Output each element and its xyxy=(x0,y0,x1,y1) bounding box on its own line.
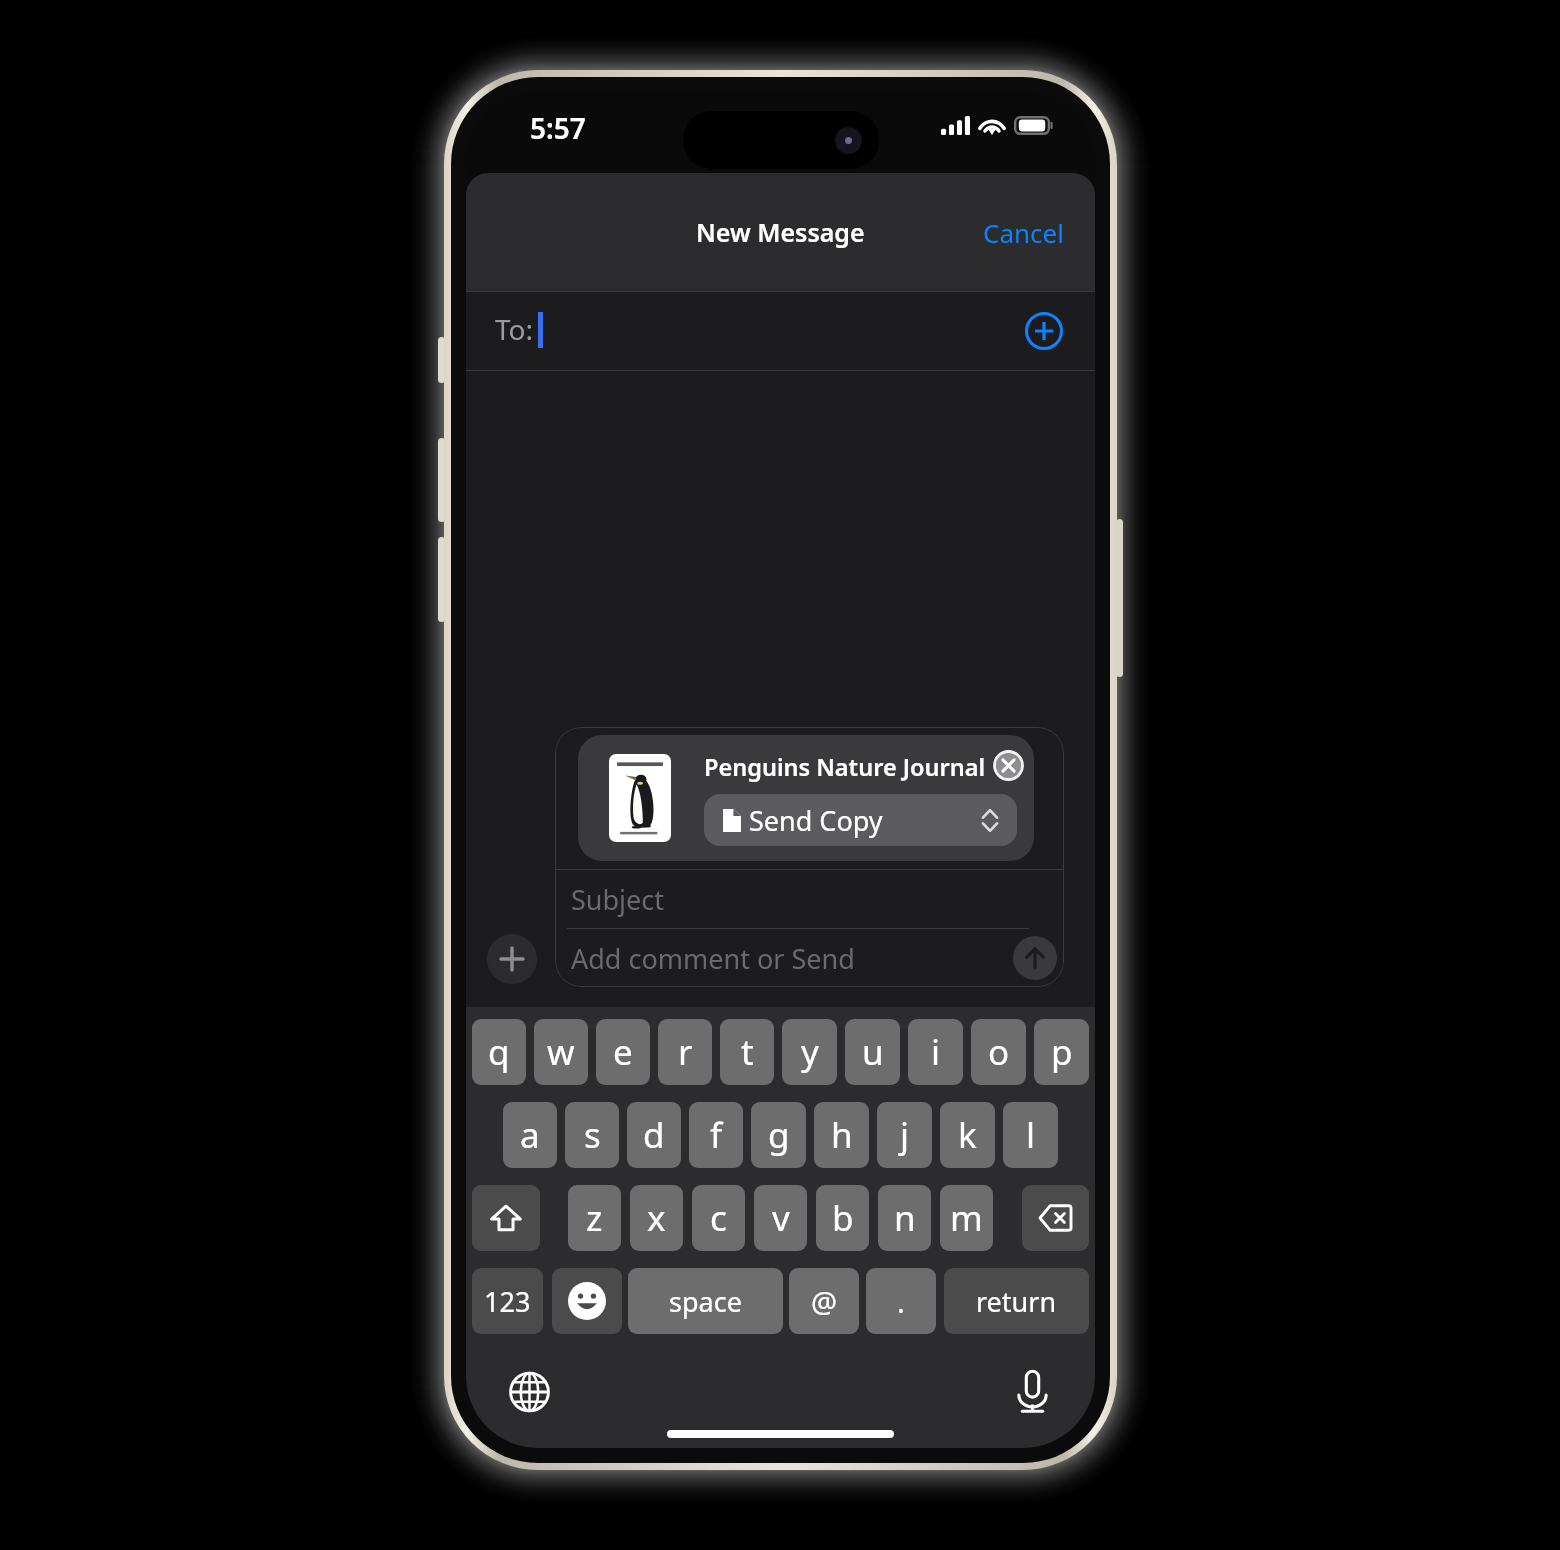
staticText: f xyxy=(710,1111,723,1159)
button[interactable]: @ xyxy=(789,1268,859,1334)
staticText: x xyxy=(647,1194,666,1242)
staticText: Penguins Nature Journal xyxy=(704,751,986,783)
staticText: y xyxy=(801,1028,819,1076)
button[interactable]: g xyxy=(751,1102,806,1168)
button[interactable]: k xyxy=(940,1102,995,1168)
button[interactable]: z xyxy=(568,1185,621,1251)
button[interactable]: x xyxy=(630,1185,683,1251)
button[interactable]: o xyxy=(971,1019,1026,1085)
button[interactable]: 123 xyxy=(472,1268,543,1334)
staticText: New Message xyxy=(696,215,865,249)
staticText: o xyxy=(988,1028,1010,1076)
staticText: Cancel xyxy=(983,215,1064,250)
button[interactable]: Send xyxy=(1013,936,1057,980)
staticText: 5:57 xyxy=(530,109,586,147)
staticText: i xyxy=(931,1028,941,1076)
staticText: w xyxy=(547,1028,575,1076)
staticText: c xyxy=(710,1194,727,1242)
button[interactable]: . xyxy=(866,1268,936,1334)
staticText: h xyxy=(831,1111,853,1159)
button[interactable]: u xyxy=(845,1019,900,1085)
button[interactable]: n xyxy=(878,1185,931,1251)
button[interactable]: Cancel xyxy=(952,201,1095,264)
staticText: e xyxy=(613,1028,633,1076)
staticText: j xyxy=(900,1111,910,1159)
button[interactable]: space xyxy=(628,1268,783,1334)
button[interactable]: Change keyboard xyxy=(509,1371,550,1413)
button[interactable]: i xyxy=(908,1019,963,1085)
staticText: n xyxy=(894,1194,916,1242)
button[interactable]: Add contact xyxy=(1025,312,1063,350)
button[interactable]: l xyxy=(1003,1102,1058,1168)
button[interactable]: c xyxy=(692,1185,745,1251)
staticText: u xyxy=(862,1028,884,1076)
staticText: @ xyxy=(811,1282,838,1321)
staticText: b xyxy=(832,1194,854,1242)
button[interactable]: w xyxy=(534,1019,588,1085)
staticText: Add comment or Send xyxy=(571,940,855,977)
button[interactable]: t xyxy=(720,1019,774,1085)
button[interactable]: b xyxy=(816,1185,869,1251)
button[interactable]: y xyxy=(782,1019,837,1085)
staticText: m xyxy=(950,1194,983,1242)
staticText: Send Copy xyxy=(749,802,883,839)
staticText: . xyxy=(897,1282,905,1321)
staticText: s xyxy=(584,1111,601,1159)
button[interactable]: Add attachment xyxy=(487,934,537,984)
button[interactable]: Dictate xyxy=(1017,1370,1048,1413)
button[interactable]: return xyxy=(944,1268,1089,1334)
staticText: q xyxy=(488,1028,510,1076)
button[interactable]: a xyxy=(503,1102,557,1168)
staticText: Subject xyxy=(571,881,665,918)
button[interactable]: r xyxy=(658,1019,712,1085)
staticText: g xyxy=(768,1111,790,1159)
staticText: To: xyxy=(495,310,534,348)
staticText: z xyxy=(586,1194,603,1242)
staticText: return xyxy=(976,1283,1057,1320)
button[interactable]: s xyxy=(565,1102,619,1168)
button[interactable]: To: xyxy=(466,292,1095,370)
staticText: 123 xyxy=(484,1283,531,1320)
button[interactable]: d xyxy=(627,1102,681,1168)
button[interactable]: v xyxy=(754,1185,807,1251)
staticText: l xyxy=(1026,1111,1036,1159)
button[interactable]: Send Copy xyxy=(704,794,1017,846)
staticText: space xyxy=(669,1283,742,1320)
staticText: t xyxy=(741,1028,754,1076)
button[interactable]: Remove attachment xyxy=(993,750,1024,781)
button[interactable]: Backspace xyxy=(1022,1185,1089,1251)
staticText: r xyxy=(678,1028,693,1076)
staticText: a xyxy=(520,1111,540,1159)
staticText: k xyxy=(958,1111,977,1159)
button[interactable]: e xyxy=(596,1019,650,1085)
staticText: p xyxy=(1051,1028,1073,1076)
staticText: d xyxy=(643,1111,665,1159)
button[interactable]: f xyxy=(689,1102,743,1168)
button[interactable]: j xyxy=(877,1102,932,1168)
button[interactable]: h xyxy=(814,1102,869,1168)
button[interactable]: m xyxy=(940,1185,993,1251)
button[interactable]: Shift xyxy=(472,1185,540,1251)
button[interactable]: q xyxy=(472,1019,526,1085)
button[interactable]: p xyxy=(1034,1019,1089,1085)
button[interactable]: Emoji xyxy=(552,1268,622,1334)
button[interactable]: Subject xyxy=(555,870,1064,928)
button[interactable]: Add comment or Send xyxy=(555,929,1064,987)
staticText: v xyxy=(772,1194,790,1242)
